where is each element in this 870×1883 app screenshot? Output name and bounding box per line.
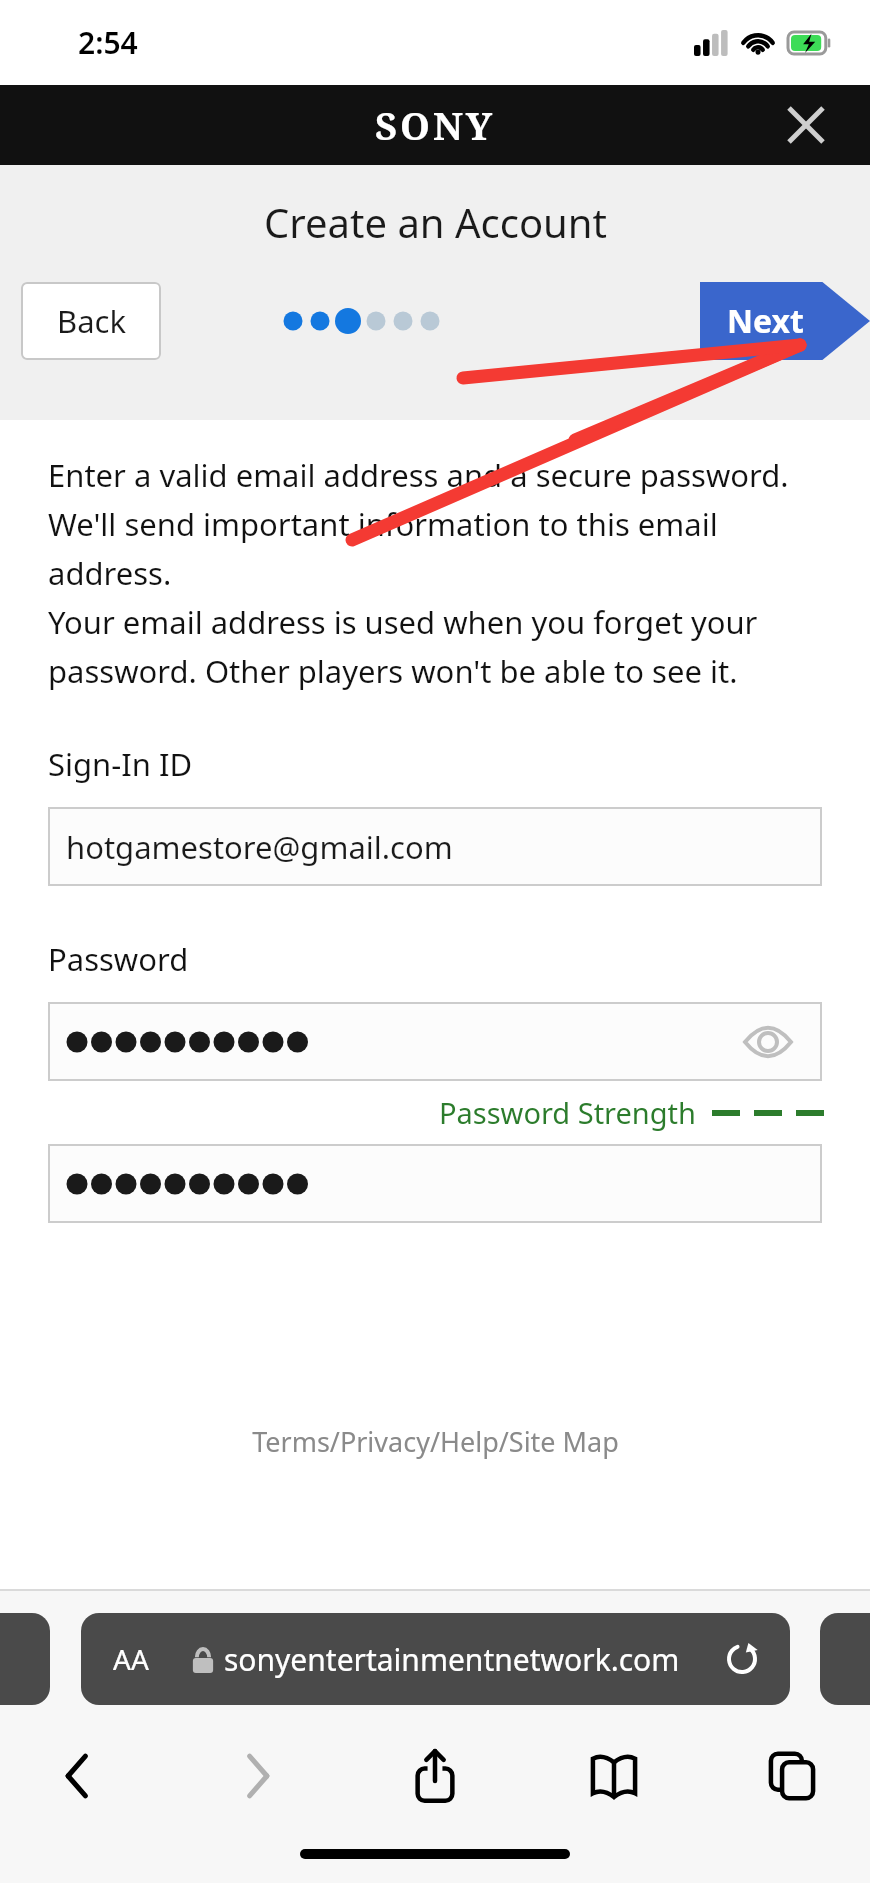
staticText: Password: [48, 938, 189, 980]
button[interactable]: hotgamestore@gmail.com: [48, 807, 822, 886]
staticText: 2:54: [78, 22, 138, 63]
button[interactable]: Share: [387, 1731, 483, 1821]
button[interactable]: Bookmarks: [566, 1731, 662, 1821]
button[interactable]: Show password: [740, 1014, 796, 1070]
staticText: SONY: [375, 99, 496, 151]
staticText: Create an Account: [264, 195, 607, 249]
staticText: Next: [727, 299, 804, 343]
button[interactable]: Forward: [209, 1731, 305, 1821]
staticText: Back: [57, 300, 126, 342]
button[interactable]: Back: [21, 282, 161, 360]
staticText: Sign-In ID: [48, 743, 193, 785]
button[interactable]: Back: [30, 1731, 126, 1821]
staticText: AA: [113, 1640, 149, 1678]
button[interactable]: Close: [780, 99, 832, 151]
button[interactable]: Terms/Privacy/Help/Site Map: [252, 1423, 619, 1460]
button[interactable]: AA: [81, 1613, 790, 1705]
button[interactable]: [48, 1144, 822, 1223]
staticText: Enter a valid email address and a secure…: [48, 454, 789, 693]
staticText: hotgamestore@gmail.com: [66, 826, 453, 868]
staticText: Password Strength: [439, 1093, 696, 1132]
button[interactable]: Tabs: [744, 1731, 840, 1821]
button[interactable]: Show password: [48, 1002, 822, 1081]
button[interactable]: Reload: [720, 1637, 764, 1681]
staticText: sonyentertainmentnetwork.com: [224, 1639, 680, 1680]
button[interactable]: Next: [700, 282, 870, 360]
